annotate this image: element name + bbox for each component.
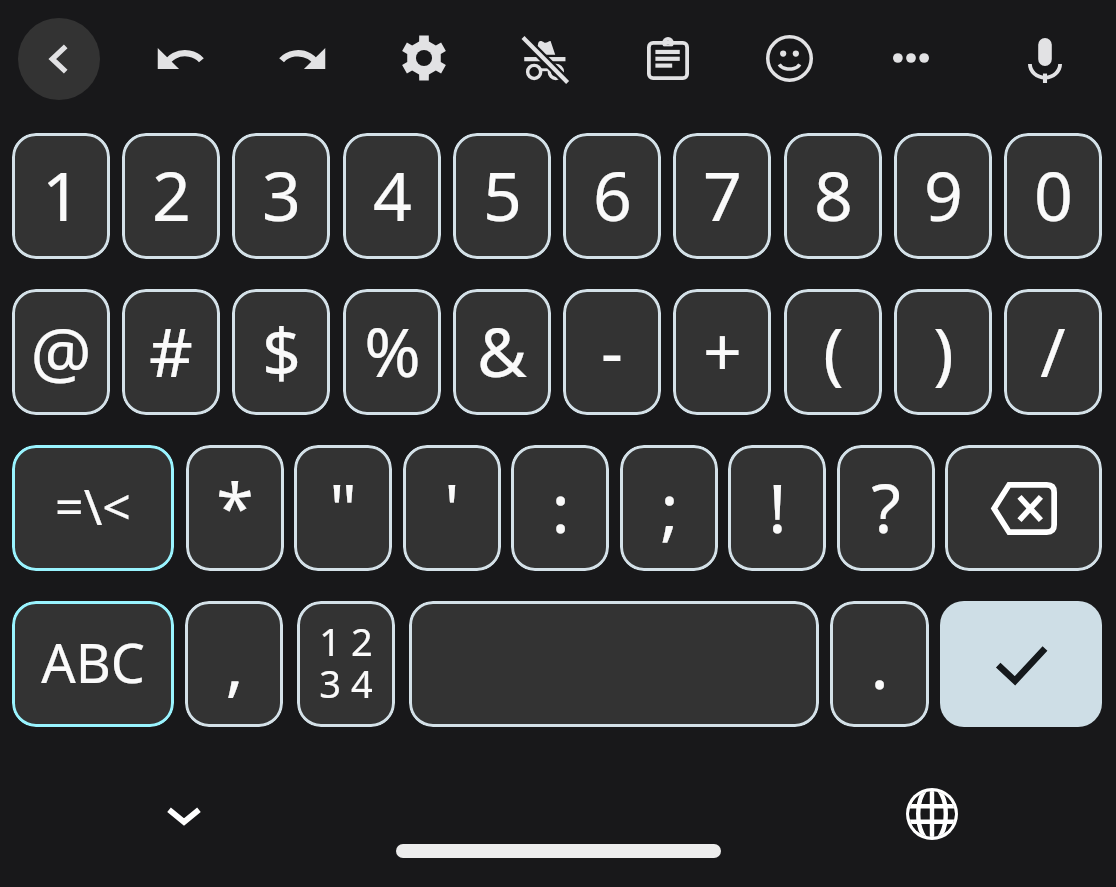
button[interactable]: ABC <box>12 601 174 727</box>
button[interactable]: 2 <box>122 133 220 259</box>
button[interactable]: Voice input <box>1005 18 1085 98</box>
staticText: # <box>149 304 193 397</box>
button[interactable]: ? <box>837 445 935 571</box>
staticText: 0 <box>1034 148 1073 241</box>
other: Enter <box>991 634 1051 694</box>
button[interactable]: 1 <box>12 133 110 259</box>
staticText: / <box>1040 304 1066 397</box>
button[interactable]: Enter <box>940 601 1102 727</box>
staticText: 6 <box>593 148 632 241</box>
button[interactable]: Change language <box>892 774 972 854</box>
button[interactable]: @ <box>12 289 110 415</box>
button[interactable]: # <box>122 289 220 415</box>
staticText: ( <box>823 304 844 397</box>
button[interactable]: Redo <box>262 18 342 98</box>
staticText: ! <box>768 460 787 553</box>
button[interactable]: Backspace <box>945 445 1102 571</box>
staticText: ; <box>660 460 679 553</box>
button[interactable]: 3 <box>232 133 330 259</box>
button[interactable]: =\< <box>12 445 174 571</box>
staticText: 5 <box>483 148 522 241</box>
button[interactable]: & <box>453 289 551 415</box>
staticText: $ <box>262 304 301 397</box>
staticText: 1 2 3 4 <box>319 615 373 709</box>
staticText: + <box>703 304 742 397</box>
staticText: @ <box>30 304 92 397</box>
button[interactable]: % <box>343 289 441 415</box>
button[interactable]: : <box>511 445 609 571</box>
staticText: ) <box>933 304 954 397</box>
staticText: 7 <box>703 148 742 241</box>
staticText: % <box>364 304 421 397</box>
button[interactable]: Incognito mode <box>505 22 585 102</box>
button[interactable]: " <box>294 445 392 571</box>
staticText: 2 <box>152 148 191 241</box>
button[interactable]: Settings <box>384 18 464 98</box>
button[interactable]: $ <box>232 289 330 415</box>
staticText: 9 <box>924 148 963 241</box>
button[interactable]: 9 <box>894 133 992 259</box>
button[interactable]: 6 <box>563 133 661 259</box>
button[interactable]: 1 2 3 4 <box>297 601 395 727</box>
button[interactable]: Emoji <box>749 18 829 98</box>
staticText: ABC <box>41 625 145 699</box>
staticText: 1 <box>42 148 81 241</box>
staticText: - <box>601 304 623 397</box>
staticText: , <box>225 616 244 709</box>
staticText: : <box>551 460 570 553</box>
staticText: =\< <box>55 472 131 540</box>
staticText: * <box>216 460 254 553</box>
staticText: . <box>870 616 889 709</box>
button[interactable]: Undo <box>141 18 221 98</box>
button[interactable] <box>409 601 819 727</box>
button[interactable]: ) <box>894 289 992 415</box>
button[interactable]: Back <box>18 18 100 100</box>
button[interactable]: ( <box>784 289 882 415</box>
button[interactable]: 4 <box>343 133 441 259</box>
staticText: " <box>329 460 357 553</box>
other: Backspace <box>990 482 1057 535</box>
button[interactable]: * <box>186 445 284 571</box>
button[interactable]: 8 <box>784 133 882 259</box>
button[interactable]: ; <box>620 445 718 571</box>
staticText: 3 <box>262 148 301 241</box>
button[interactable]: ! <box>728 445 826 571</box>
button[interactable]: + <box>673 289 771 415</box>
button[interactable]: Hide keyboard <box>144 775 224 855</box>
button[interactable]: 5 <box>453 133 551 259</box>
button[interactable]: 0 <box>1004 133 1102 259</box>
staticText: 4 <box>373 148 412 241</box>
staticText: ? <box>871 460 901 553</box>
staticText: 8 <box>814 148 853 241</box>
button[interactable]: 7 <box>673 133 771 259</box>
staticText: ' <box>444 460 460 553</box>
button[interactable]: Clipboard <box>628 18 708 98</box>
button[interactable]: ' <box>403 445 501 571</box>
button[interactable]: - <box>563 289 661 415</box>
button[interactable]: . <box>830 601 929 727</box>
button[interactable]: , <box>185 601 283 727</box>
button[interactable]: More options <box>871 18 951 98</box>
staticText: & <box>477 304 527 397</box>
button[interactable]: / <box>1004 289 1102 415</box>
